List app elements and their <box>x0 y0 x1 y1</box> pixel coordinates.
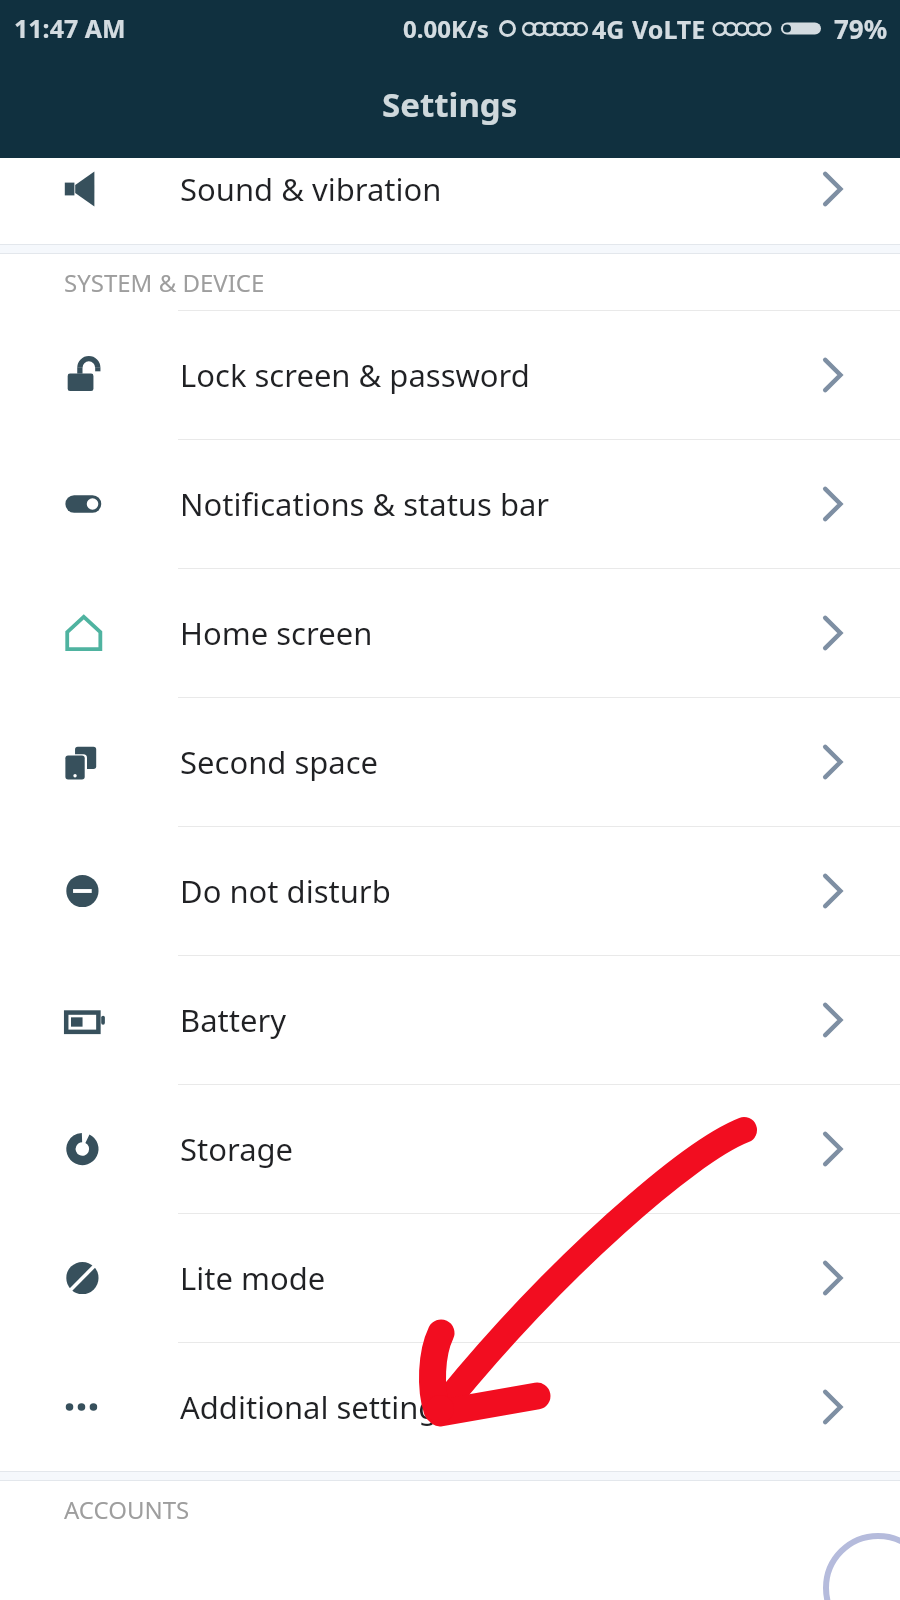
staticText: VoLTE <box>632 12 706 46</box>
staticText: Second space <box>180 741 379 783</box>
button[interactable]: Notifications & status bar <box>0 440 900 568</box>
staticText: Additional settings <box>180 1386 453 1428</box>
button[interactable]: Lock screen & password <box>0 311 900 439</box>
other: Open Notifications & status bar <box>822 486 842 522</box>
button[interactable]: Additional settings <box>0 1343 900 1471</box>
button[interactable]: Battery <box>0 956 900 1084</box>
staticText: Settings <box>382 82 518 127</box>
other: Open Additional settings <box>822 1389 842 1425</box>
other: Open Lite mode <box>822 1260 842 1296</box>
button[interactable]: Lite mode <box>0 1214 900 1342</box>
staticText: SYSTEM & DEVICE <box>64 266 265 299</box>
other: Open Second space <box>822 744 842 780</box>
staticText: 79% <box>834 11 888 46</box>
staticText: Home screen <box>180 612 373 654</box>
other: Open Sound & vibration <box>822 171 842 207</box>
staticText: Lite mode <box>180 1257 326 1299</box>
other: Open Storage <box>822 1131 842 1167</box>
staticText: 0.00K/s <box>403 12 489 45</box>
button[interactable]: Second space <box>0 698 900 826</box>
button[interactable]: Home screen <box>0 569 900 697</box>
staticText: Sound & vibration <box>180 168 442 210</box>
button[interactable]: Sound & vibration <box>0 158 900 244</box>
other: Open Battery <box>822 1002 842 1038</box>
button[interactable]: Storage <box>0 1085 900 1213</box>
other: Open Lock screen & password <box>822 357 842 393</box>
staticText: 4G <box>592 12 625 46</box>
button[interactable]: Do not disturb <box>0 827 900 955</box>
other: Open Home screen <box>822 615 842 651</box>
staticText: Notifications & status bar <box>180 483 550 525</box>
staticText: Lock screen & password <box>180 354 530 396</box>
staticText: Storage <box>180 1128 294 1170</box>
staticText: Do not disturb <box>180 870 391 912</box>
other: Open Do not disturb <box>822 873 842 909</box>
staticText: ACCOUNTS <box>64 1493 190 1526</box>
staticText: Battery <box>180 999 287 1041</box>
staticText: 11:47 AM <box>14 11 126 45</box>
